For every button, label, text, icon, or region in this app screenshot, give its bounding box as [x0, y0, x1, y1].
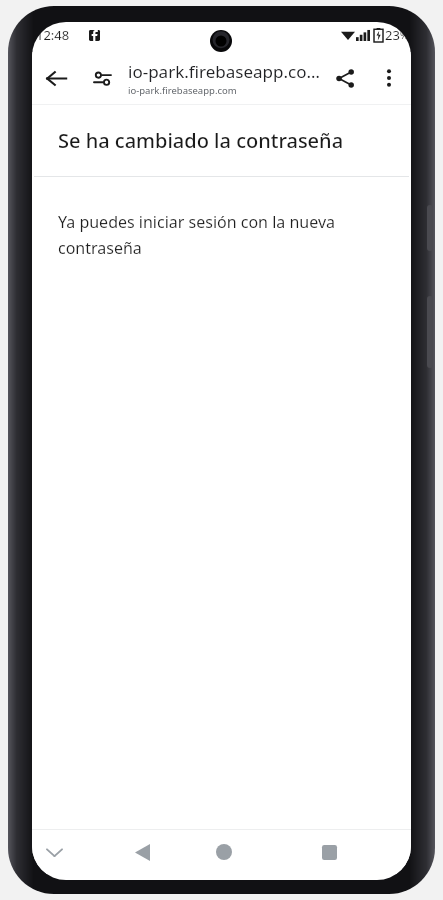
staticText: Ya puedes iniciar sesión con la nueva co…: [58, 211, 335, 259]
button[interactable]: Recent apps: [307, 830, 351, 874]
button[interactable]: io-park.firebaseapp.co…: [128, 60, 328, 97]
button[interactable]: Share: [325, 58, 365, 98]
button[interactable]: More options: [369, 58, 409, 98]
staticText: io-park.firebaseapp.com: [128, 84, 237, 97]
staticText: 23: [385, 26, 400, 44]
button[interactable]: Hide keyboard: [35, 833, 73, 871]
staticText: Se ha cambiado la contraseña: [58, 127, 344, 154]
button[interactable]: Home: [202, 830, 246, 874]
staticText: %: [400, 28, 409, 42]
button[interactable]: Back: [36, 58, 76, 98]
button[interactable]: Site settings: [82, 58, 122, 98]
staticText: 12:48: [36, 26, 70, 44]
button[interactable]: Back: [120, 830, 164, 874]
staticText: io-park.firebaseapp.co…: [128, 60, 320, 83]
